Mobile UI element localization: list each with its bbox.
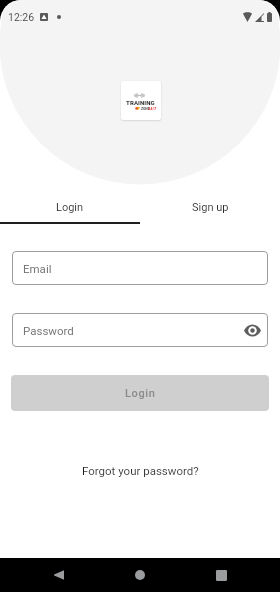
- button[interactable]: Login: [11, 375, 269, 411]
- staticText: 12:26: [8, 11, 35, 23]
- button[interactable]: Home: [120, 558, 160, 592]
- staticText: Login: [125, 387, 156, 400]
- button[interactable]: Login: [0, 192, 140, 222]
- staticText: ZONE: [141, 107, 150, 111]
- staticText: Sign up: [192, 201, 229, 214]
- button[interactable]: Show password: [241, 319, 263, 341]
- staticText: Password: [23, 324, 74, 337]
- button[interactable]: Forgot your password?: [82, 464, 199, 477]
- button[interactable]: Sign up: [140, 192, 280, 222]
- button[interactable]: Password: [12, 313, 268, 347]
- button[interactable]: Email: [12, 251, 268, 285]
- button[interactable]: Back: [38, 558, 78, 592]
- staticText: Email: [23, 262, 52, 275]
- staticText: 24/7: [148, 106, 157, 111]
- staticText: Login: [56, 201, 84, 214]
- button[interactable]: Recent apps: [201, 558, 241, 592]
- staticText: TRAINING: [126, 99, 155, 106]
